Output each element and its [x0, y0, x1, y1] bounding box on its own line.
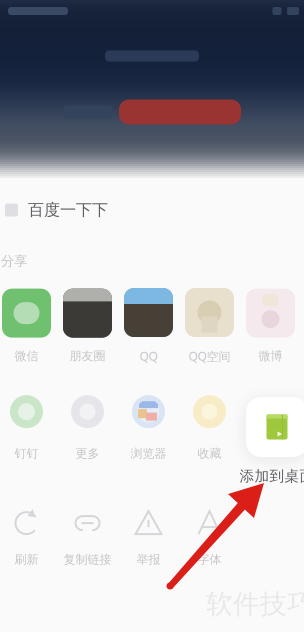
staticText: 刷新: [14, 552, 38, 567]
staticText: QQ: [139, 348, 157, 364]
staticText: 分享: [1, 253, 27, 269]
staticText: 朋友圈: [69, 349, 105, 363]
staticText: 微博: [258, 349, 282, 363]
button[interactable]: 刷新: [0, 503, 55, 571]
button[interactable]: 微信: [0, 290, 55, 362]
button[interactable]: 字体: [180, 503, 238, 571]
button[interactable]: 收藏: [180, 396, 238, 459]
staticText: 百度一下下: [28, 200, 108, 220]
button[interactable]: 朋友圈: [58, 290, 116, 362]
staticText: 复制链接: [63, 552, 111, 567]
staticText: 软件技巧: [206, 588, 304, 620]
button[interactable]: 百度一下下: [0, 195, 304, 225]
staticText: 钉钉: [14, 446, 38, 461]
staticText: 举报: [136, 552, 160, 567]
button[interactable]: 微博: [241, 290, 299, 362]
staticText: 字体: [197, 552, 221, 567]
button[interactable]: 更多: [58, 396, 116, 459]
staticText: 更多: [75, 446, 99, 461]
button[interactable]: 添加到桌面: [232, 392, 304, 488]
staticText: QQ空间: [188, 348, 230, 364]
button[interactable]: QQ: [119, 290, 177, 362]
staticText: 添加到桌面: [239, 467, 304, 485]
button[interactable]: 复制链接: [58, 503, 116, 571]
staticText: 微信: [14, 349, 38, 363]
staticText: 浏览器: [130, 446, 166, 461]
button[interactable]: 浏览器: [119, 396, 177, 459]
staticText: 收藏: [197, 446, 221, 461]
button[interactable]: 举报: [119, 503, 177, 571]
button[interactable]: QQ空间: [180, 290, 238, 362]
button[interactable]: 钉钉: [0, 396, 55, 459]
